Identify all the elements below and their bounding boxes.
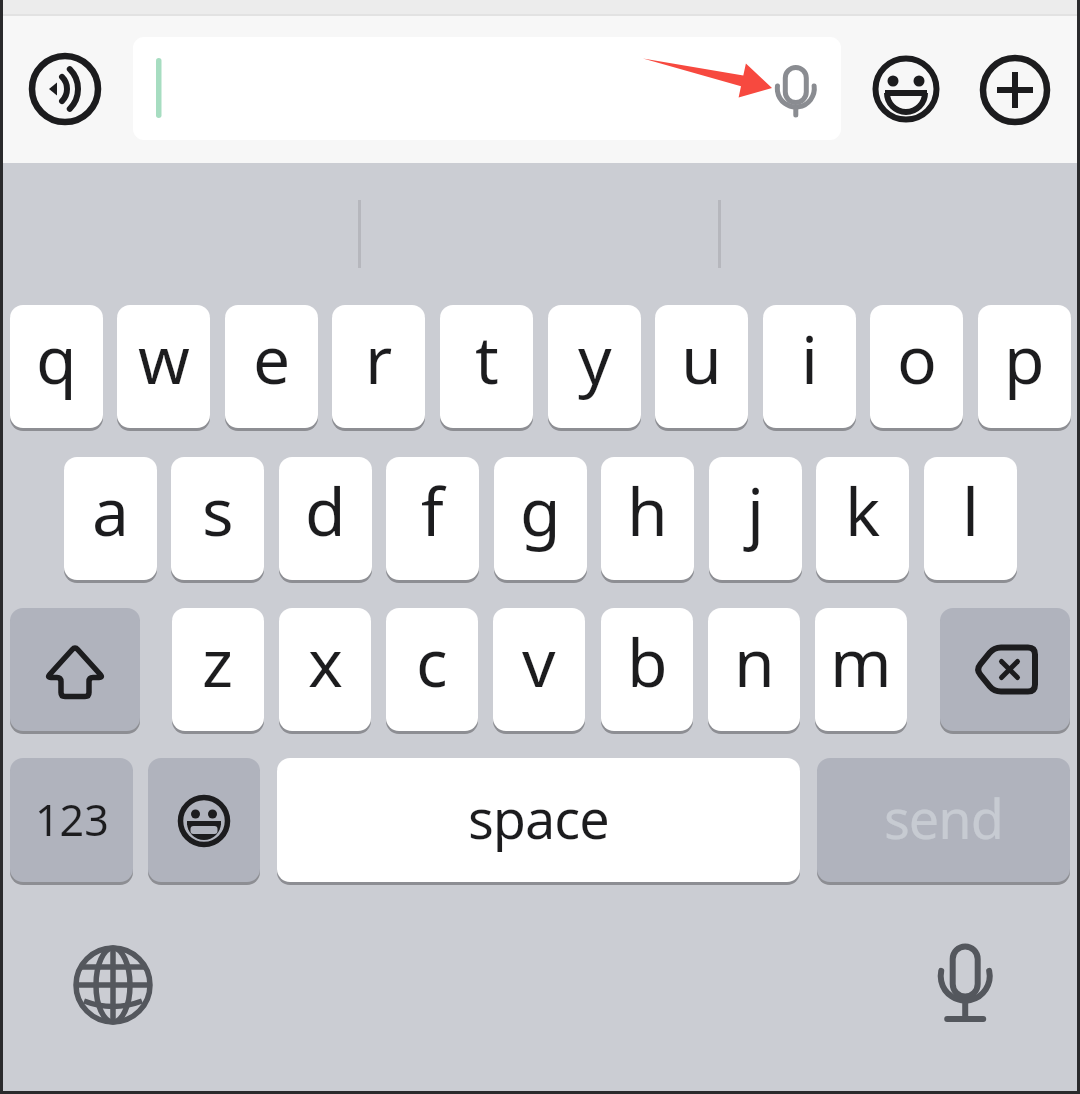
button[interactable]: y xyxy=(548,305,641,428)
staticText: c xyxy=(416,616,448,706)
button[interactable]: j xyxy=(709,457,802,580)
staticText: 123 xyxy=(35,790,109,849)
staticText: space xyxy=(468,781,609,855)
staticText: e xyxy=(253,313,291,403)
staticText: k xyxy=(845,465,881,555)
button[interactable]: s xyxy=(171,457,264,580)
staticText: m xyxy=(830,616,892,706)
button[interactable]: i xyxy=(763,305,856,428)
staticText: z xyxy=(202,616,234,706)
button[interactable]: v xyxy=(493,608,585,731)
staticText: d xyxy=(305,465,346,555)
staticText: n xyxy=(734,616,775,706)
staticText: v xyxy=(522,616,556,706)
staticText: a xyxy=(92,465,130,555)
staticText: l xyxy=(962,465,980,555)
staticText: o xyxy=(897,313,937,403)
button[interactable] xyxy=(25,49,105,129)
staticText: y xyxy=(578,313,612,403)
staticText: t xyxy=(475,313,499,403)
staticText: w xyxy=(138,313,190,403)
staticText: b xyxy=(627,616,668,706)
button[interactable] xyxy=(69,941,157,1029)
button[interactable]: f xyxy=(386,457,479,580)
button[interactable]: e xyxy=(225,305,318,428)
button[interactable]: x xyxy=(279,608,371,731)
button[interactable]: o xyxy=(870,305,963,428)
staticText: i xyxy=(801,313,819,403)
button[interactable]: z xyxy=(172,608,264,731)
staticText: j xyxy=(747,465,765,555)
button[interactable] xyxy=(975,50,1055,130)
staticText: send xyxy=(884,781,1003,855)
button[interactable]: u xyxy=(655,305,748,428)
button[interactable] xyxy=(940,608,1070,731)
button[interactable]: m xyxy=(815,608,907,731)
staticText: p xyxy=(1004,313,1045,403)
button[interactable]: t xyxy=(440,305,533,428)
button[interactable]: 123 xyxy=(10,758,133,882)
staticText: h xyxy=(627,465,668,555)
button[interactable]: h xyxy=(601,457,694,580)
staticText: s xyxy=(202,465,234,555)
button[interactable]: n xyxy=(708,608,800,731)
button[interactable] xyxy=(133,37,841,140)
button[interactable]: l xyxy=(924,457,1017,580)
button[interactable]: w xyxy=(117,305,210,428)
button[interactable]: q xyxy=(10,305,103,428)
button[interactable]: a xyxy=(64,457,157,580)
staticText: g xyxy=(520,465,561,555)
button[interactable]: g xyxy=(494,457,587,580)
button[interactable]: p xyxy=(978,305,1071,428)
button[interactable]: d xyxy=(279,457,372,580)
button[interactable] xyxy=(866,49,946,129)
button[interactable]: space xyxy=(277,758,800,882)
staticText: q xyxy=(36,313,77,403)
button[interactable]: send xyxy=(817,758,1070,882)
staticText: f xyxy=(421,465,444,555)
button[interactable]: c xyxy=(386,608,478,731)
staticText: u xyxy=(681,313,722,403)
button[interactable]: k xyxy=(816,457,909,580)
staticText: r xyxy=(365,313,393,403)
button[interactable] xyxy=(148,758,260,882)
button[interactable]: b xyxy=(601,608,693,731)
staticText: x xyxy=(308,616,343,706)
button[interactable]: r xyxy=(332,305,425,428)
button[interactable] xyxy=(10,608,140,731)
button[interactable] xyxy=(921,938,1009,1026)
